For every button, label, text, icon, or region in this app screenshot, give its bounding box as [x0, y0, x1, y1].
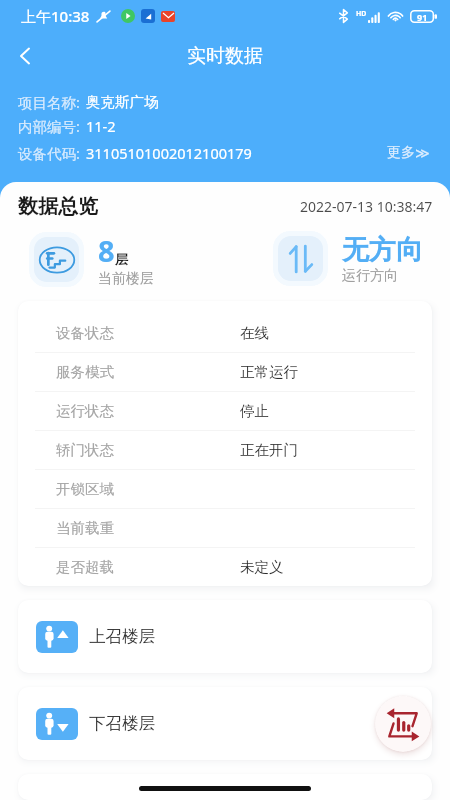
staticText: 未定义	[240, 558, 284, 576]
staticText: 2022-07-13 10:38:47	[300, 197, 433, 216]
staticText: 开锁区域	[56, 480, 114, 498]
staticText: 上召楼层	[89, 626, 155, 647]
button[interactable]: 无方向	[273, 231, 423, 286]
staticText: ≫	[415, 145, 430, 161]
staticText: 是否超载	[56, 558, 114, 576]
staticText: 设备状态	[56, 324, 114, 342]
staticText: 下召楼层	[89, 713, 155, 734]
staticText: 上午10:38	[21, 6, 90, 26]
staticText: 运行状态	[56, 402, 114, 420]
staticText: 8	[98, 231, 115, 270]
button[interactable]: 更多	[379, 140, 450, 166]
staticText: 运行方向	[342, 267, 398, 285]
button[interactable]: More floor calls	[18, 774, 432, 800]
staticText: 服务模式	[56, 363, 114, 381]
staticText: 轿门状态	[56, 441, 114, 459]
staticText: 奥克斯广场	[86, 93, 159, 111]
staticText: 数据总览	[18, 194, 98, 219]
staticText: 更多	[387, 144, 415, 162]
staticText: 当前载重	[56, 519, 114, 537]
staticText: 正常运行	[240, 363, 298, 381]
staticText: 内部编号:	[18, 116, 80, 136]
staticText: 层	[115, 251, 128, 267]
staticText: 31105101002012100179	[86, 143, 252, 163]
button[interactable]: 8	[29, 231, 154, 287]
button[interactable]: 设备状态	[18, 314, 432, 352]
staticText: HD	[356, 9, 367, 19]
button[interactable]: 开锁区域	[18, 470, 432, 508]
staticText: 当前楼层	[98, 270, 154, 287]
staticText: 91	[417, 11, 428, 23]
staticText: 在线	[240, 324, 269, 342]
button[interactable]: 上召楼层	[18, 600, 432, 673]
button[interactable]: Refresh data	[375, 696, 431, 752]
button[interactable]: 当前载重	[18, 509, 432, 547]
staticText: 项目名称:	[18, 92, 80, 112]
staticText: 11-2	[86, 116, 116, 136]
staticText: 实时数据	[187, 44, 263, 68]
staticText: 正在开门	[240, 441, 298, 459]
button[interactable]: 是否超载	[18, 548, 432, 586]
button[interactable]: 轿门状态	[18, 431, 432, 469]
staticText: 设备代码:	[18, 143, 80, 163]
button[interactable]: 下召楼层	[18, 687, 432, 760]
staticText: 无方向	[342, 233, 423, 267]
button[interactable]: Back	[4, 35, 46, 77]
button[interactable]: 服务模式	[18, 353, 432, 391]
staticText: 停止	[240, 402, 269, 420]
button[interactable]: 运行状态	[18, 392, 432, 430]
